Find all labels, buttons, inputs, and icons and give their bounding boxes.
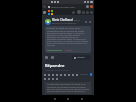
staticText: Envoyer (80, 73, 89, 76)
button[interactable]: Apps (82, 11, 85, 14)
button[interactable]: Répondre (45, 63, 65, 68)
button[interactable]: Marie Chaffrand (45, 18, 91, 25)
staticText: Réunion de préparation (52, 22, 77, 25)
staticText: Répondre (45, 63, 65, 68)
button[interactable]: Send (90, 73, 92, 76)
staticText: Saisissez votre réponse (45, 69, 69, 72)
button[interactable]: Tabs (43, 5, 46, 8)
button[interactable]: Forward (51, 56, 54, 59)
staticText: compte-rendu (47, 49, 62, 52)
staticText: 09:14 (74, 19, 80, 22)
button[interactable]: More (90, 11, 93, 14)
button[interactable]: Ajouter une réaction (72, 55, 91, 60)
button[interactable]: Bonjour à toutes et à tous, nous confirm… (45, 26, 91, 53)
button[interactable]: Menu (43, 11, 46, 14)
button[interactable]: Le message précédent se trouve ici et co… (45, 82, 91, 94)
staticText: Marie Chaffrand (52, 18, 73, 22)
staticText: urgent (65, 49, 72, 52)
staticText: Bonjour à toutes et à tous, nous confirm… (47, 27, 89, 46)
button[interactable]: Search (72, 11, 75, 14)
staticText: teams.microsoft.com (51, 5, 75, 8)
button[interactable]: Notifications (86, 11, 89, 14)
staticText: Ajouter une réaction (77, 56, 89, 59)
button[interactable]: Account (77, 10, 81, 14)
button[interactable]: Tab count (86, 5, 89, 8)
staticText: Le message précédent se trouve ici et co… (47, 83, 89, 93)
button[interactable]: Profile (90, 5, 93, 8)
button[interactable]: Like (45, 56, 48, 59)
